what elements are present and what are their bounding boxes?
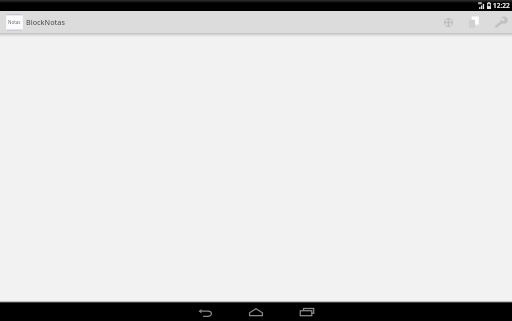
button[interactable]: Dashboard bbox=[436, 11, 461, 33]
staticText: Notas bbox=[8, 19, 21, 25]
button[interactable]: BlockNotas app icon bbox=[6, 14, 23, 31]
button[interactable]: Copy bbox=[461, 11, 486, 33]
button[interactable]: Tools bbox=[486, 11, 511, 33]
button[interactable]: Home bbox=[238, 302, 274, 321]
staticText: 12:22 bbox=[493, 1, 510, 10]
staticText: BlockNotas bbox=[26, 17, 65, 27]
button[interactable]: Recents bbox=[289, 302, 325, 321]
button[interactable]: Back bbox=[187, 302, 223, 321]
